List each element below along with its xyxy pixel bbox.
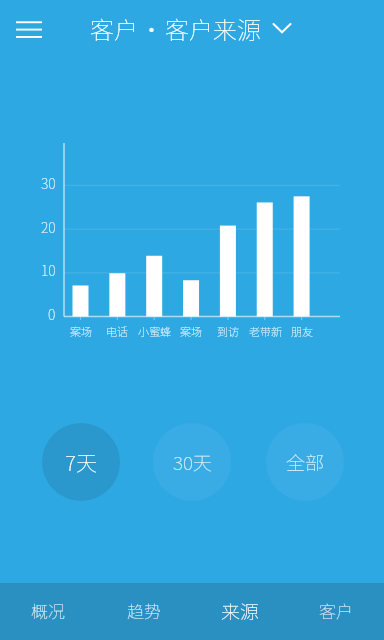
staticText: 20 xyxy=(41,217,56,235)
staticText: 10 xyxy=(41,260,56,278)
staticText: 电话 xyxy=(106,323,128,339)
button[interactable]: 7天 xyxy=(42,423,120,501)
button[interactable]: 来源 xyxy=(192,582,288,639)
staticText: 30天 xyxy=(173,448,212,476)
staticText: 客户 xyxy=(319,598,353,623)
staticText: 老带新 xyxy=(249,323,282,339)
staticText: 案场 xyxy=(180,323,202,339)
staticText: 全部 xyxy=(286,448,325,476)
staticText: 朋友 xyxy=(291,323,313,339)
button[interactable]: 趋势 xyxy=(96,582,192,639)
staticText: 小蜜蜂 xyxy=(138,323,171,339)
staticText: 概况 xyxy=(31,598,65,623)
staticText: 7天 xyxy=(65,447,97,477)
button[interactable]: 客户 xyxy=(288,582,384,639)
staticText: 趋势 xyxy=(127,598,161,623)
staticText: 0 xyxy=(48,304,56,322)
staticText: 到访 xyxy=(217,323,239,339)
staticText: 客户 · 客户来源 xyxy=(90,11,261,46)
staticText: 来源 xyxy=(221,597,260,625)
staticText: 案场 xyxy=(70,323,92,339)
staticText: 30 xyxy=(41,173,56,191)
button[interactable]: 客户 · 客户来源 xyxy=(90,6,305,50)
button[interactable]: 概况 xyxy=(0,582,96,639)
button[interactable]: 全部 xyxy=(266,423,344,501)
button[interactable]: Menu xyxy=(6,9,52,49)
button[interactable]: 30天 xyxy=(153,423,231,501)
